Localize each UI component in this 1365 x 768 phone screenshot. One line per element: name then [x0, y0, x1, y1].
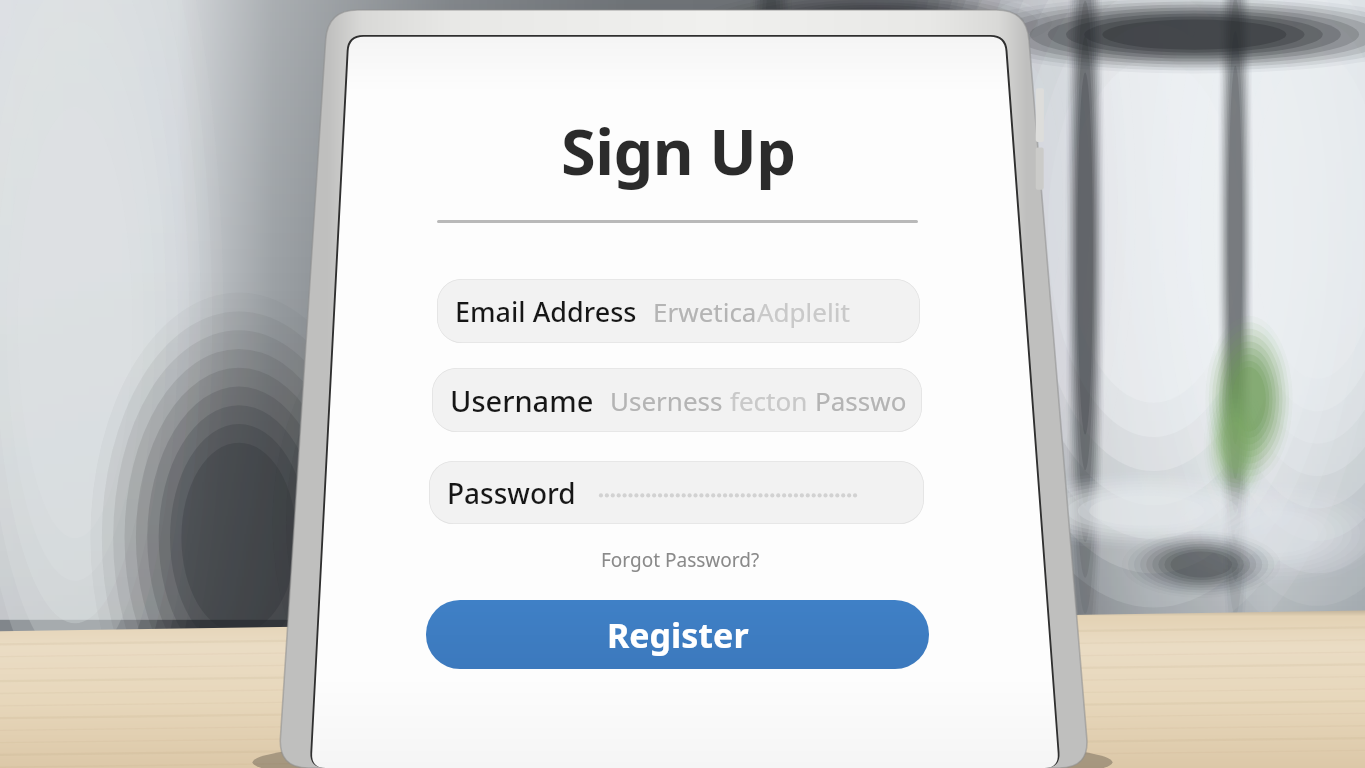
staticText: Adplelit	[757, 294, 850, 329]
staticText: fecton	[730, 383, 815, 418]
button[interactable]: Username	[432, 368, 922, 432]
staticText: Username	[450, 381, 594, 420]
staticText: Erwetica	[653, 294, 757, 329]
staticText: Forgot Password?	[601, 547, 760, 573]
staticText: Register	[607, 612, 749, 658]
button[interactable]: Password	[429, 461, 924, 524]
button[interactable]: Register	[426, 600, 929, 669]
staticText: Userness	[610, 383, 730, 418]
staticText: Sign Up	[561, 108, 796, 194]
button[interactable]: Email Address	[437, 279, 920, 343]
staticText: Password	[815, 383, 908, 418]
button[interactable]: Forgot Password?	[560, 543, 800, 577]
staticText: Email Address	[455, 293, 637, 330]
staticText: Password	[447, 474, 576, 512]
